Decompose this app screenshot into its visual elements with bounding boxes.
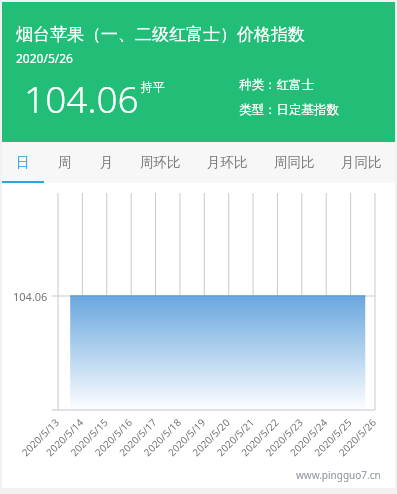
- button[interactable]: 日: [2, 142, 44, 183]
- staticText: 月同比: [341, 154, 382, 171]
- staticText: 周环比: [140, 154, 181, 171]
- button[interactable]: 月环比: [194, 142, 261, 183]
- staticText: 烟台苹果（一、二级红富士）价格指数: [16, 24, 305, 45]
- staticText: 月: [100, 154, 114, 171]
- button[interactable]: 月同比: [328, 142, 395, 183]
- staticText: 类型：日定基指数: [239, 102, 339, 118]
- button[interactable]: 周: [44, 142, 86, 183]
- staticText: 周: [58, 154, 72, 171]
- button[interactable]: 月: [86, 142, 127, 183]
- staticText: 104.06: [24, 73, 139, 123]
- staticText: 2020/5/26: [16, 50, 73, 66]
- staticText: 月环比: [207, 154, 248, 171]
- staticText: 持平: [141, 79, 165, 94]
- button[interactable]: 周同比: [261, 142, 328, 183]
- staticText: 周同比: [274, 154, 315, 171]
- staticText: 日: [16, 154, 30, 171]
- button[interactable]: 周环比: [127, 142, 194, 183]
- staticText: 种类：红富士: [239, 77, 314, 93]
